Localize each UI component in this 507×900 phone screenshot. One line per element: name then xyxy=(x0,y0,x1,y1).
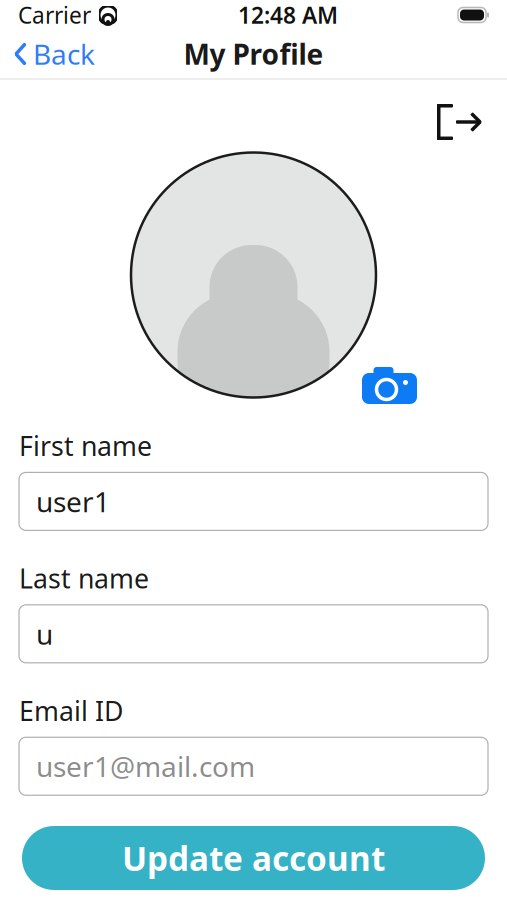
button[interactable]: Update account xyxy=(22,826,485,890)
staticText: user1 xyxy=(36,483,110,520)
staticText: My Profile xyxy=(183,35,323,73)
button[interactable]: Change photo xyxy=(361,365,418,405)
staticText: Last name xyxy=(19,560,149,596)
staticText: First name xyxy=(19,428,152,463)
staticText: u xyxy=(36,615,53,652)
button[interactable]: user1 xyxy=(19,472,488,530)
button[interactable]: Log out xyxy=(429,96,487,148)
staticText: user1@mail.com xyxy=(36,748,255,785)
button[interactable]: u xyxy=(19,605,488,663)
staticText: 12:48 AM xyxy=(238,0,338,30)
staticText: Back xyxy=(33,35,95,73)
staticText: Update account xyxy=(122,836,385,880)
staticText: Email ID xyxy=(19,693,123,728)
button[interactable]: Back xyxy=(0,29,109,79)
staticText: Carrier xyxy=(18,0,91,30)
button[interactable]: user1@mail.com xyxy=(19,737,488,795)
